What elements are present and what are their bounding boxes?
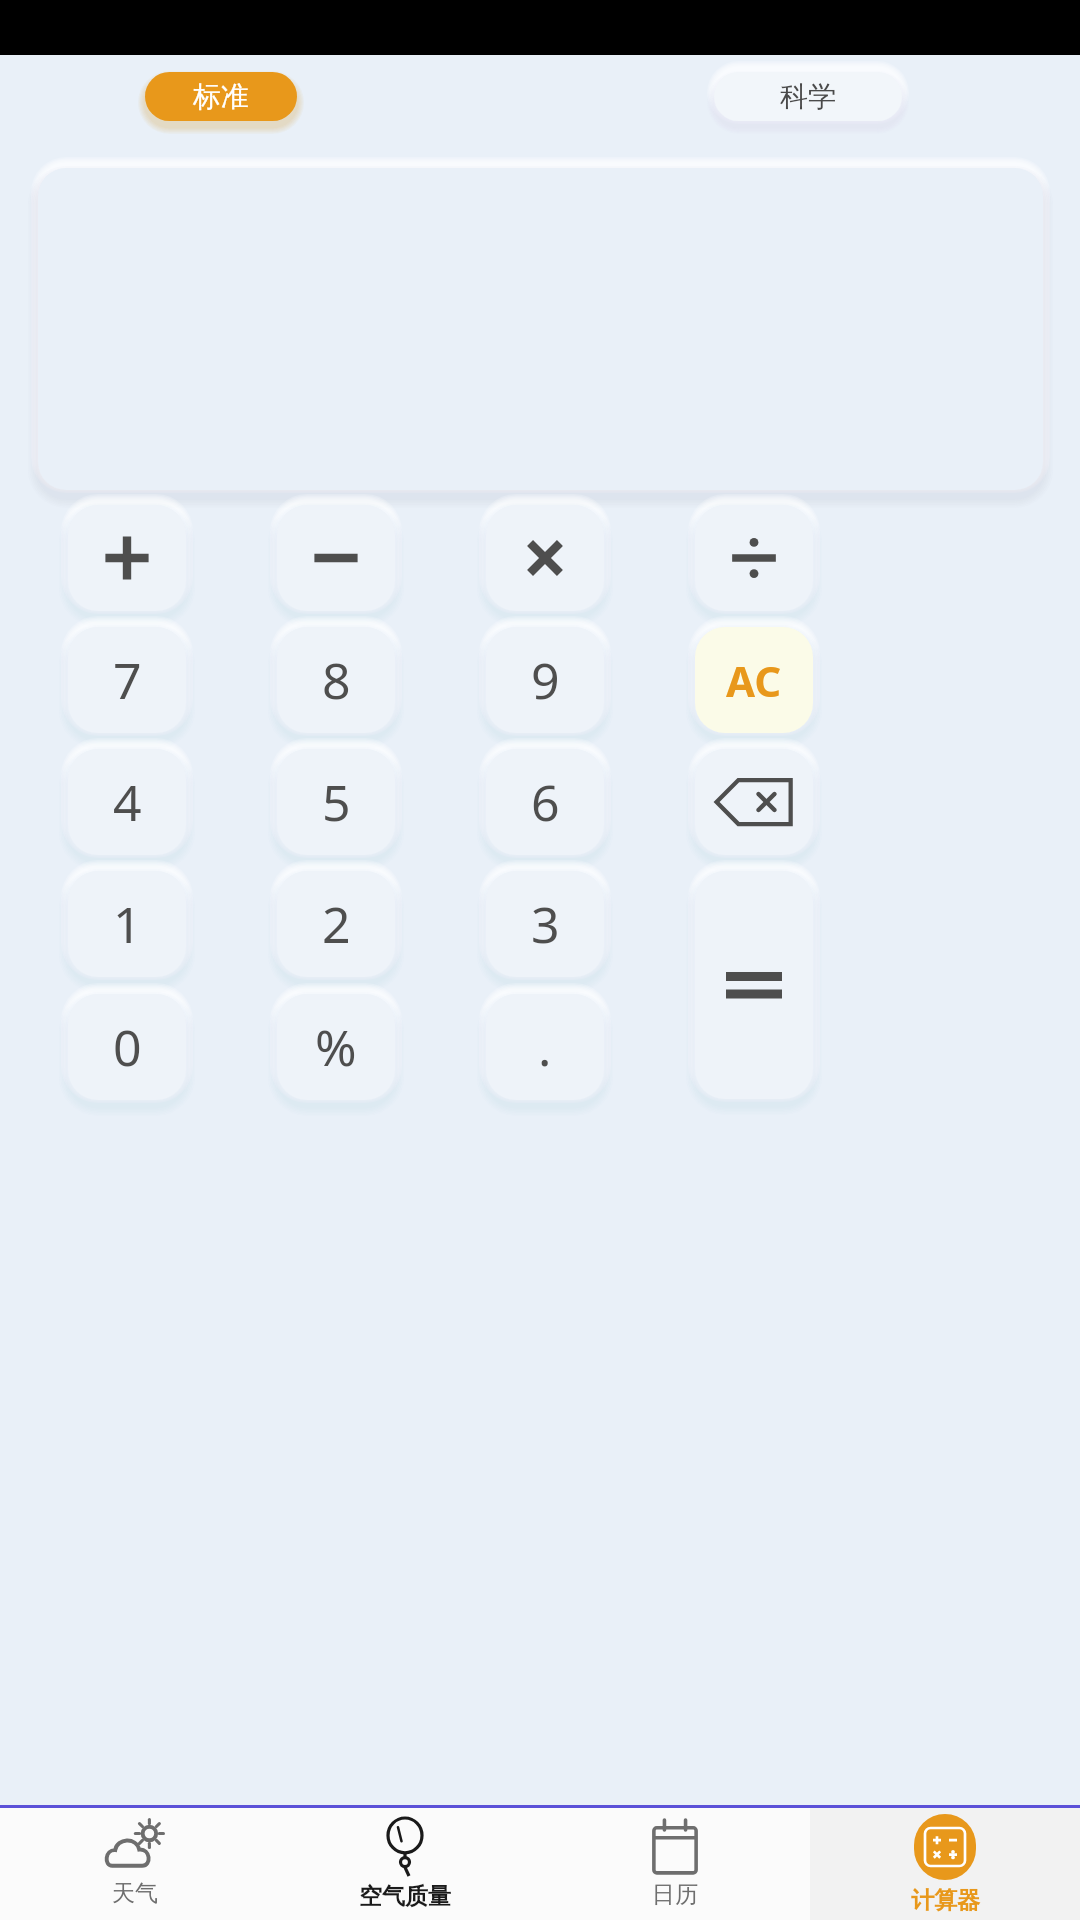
staticText: 计算器 <box>911 1886 980 1915</box>
button[interactable]: 空气质量 <box>270 1808 540 1920</box>
staticText: 1 <box>113 890 142 958</box>
button[interactable]: Divide <box>695 505 813 611</box>
button[interactable]: 3 <box>486 871 604 977</box>
staticText: 7 <box>113 646 142 714</box>
staticText: AC <box>726 652 782 709</box>
staticText: % <box>315 1013 357 1081</box>
button[interactable]: 7 <box>68 627 186 733</box>
staticText: . <box>538 1013 552 1081</box>
button[interactable]: . <box>486 994 604 1100</box>
button[interactable]: 6 <box>486 749 604 855</box>
button[interactable]: 0 <box>68 994 186 1100</box>
staticText: 日历 <box>652 1880 698 1909</box>
button[interactable]: 5 <box>277 749 395 855</box>
button[interactable]: 科学 <box>714 72 902 121</box>
staticText: 空气质量 <box>359 1882 451 1911</box>
button[interactable]: Backspace <box>695 749 813 855</box>
button[interactable]: AC <box>695 627 813 733</box>
button[interactable]: Minus <box>277 505 395 611</box>
button[interactable]: 标准 <box>145 72 297 121</box>
button[interactable]: Plus <box>68 505 186 611</box>
staticText: 9 <box>531 646 560 714</box>
staticText: 天气 <box>112 1879 158 1908</box>
button[interactable]: Equals <box>695 871 813 1099</box>
staticText: 6 <box>531 768 560 836</box>
staticText: 0 <box>113 1013 142 1081</box>
button[interactable]: 4 <box>68 749 186 855</box>
staticText: 2 <box>322 890 351 958</box>
staticText: 8 <box>322 646 351 714</box>
button[interactable]: 计算器 <box>810 1808 1080 1920</box>
button[interactable]: 8 <box>277 627 395 733</box>
button[interactable]: 9 <box>486 627 604 733</box>
staticText: 3 <box>531 890 560 958</box>
button[interactable]: 1 <box>68 871 186 977</box>
button[interactable]: 2 <box>277 871 395 977</box>
button[interactable]: 天气 <box>0 1808 270 1920</box>
button[interactable]: Multiply <box>486 505 604 611</box>
staticText: 5 <box>322 768 351 836</box>
staticText: 4 <box>113 768 142 836</box>
staticText: 标准 <box>193 79 249 114</box>
staticText: 科学 <box>780 79 836 114</box>
button[interactable]: 日历 <box>540 1808 810 1920</box>
button[interactable]: % <box>277 994 395 1100</box>
